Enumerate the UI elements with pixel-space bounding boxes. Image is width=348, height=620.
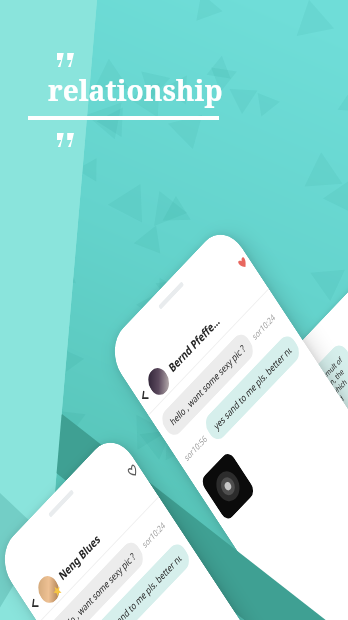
staticText: yes sand to me pls. better nudey xyxy=(101,551,184,620)
staticText: hello , want some sexy pic ? xyxy=(167,341,248,428)
staticText: sor10:24 xyxy=(140,518,167,550)
staticText: hello , want some sexy pic ? xyxy=(57,549,138,620)
button[interactable] xyxy=(135,385,153,407)
button[interactable] xyxy=(233,251,251,273)
staticText: sor10:24 xyxy=(250,310,277,342)
button[interactable] xyxy=(25,593,43,615)
staticText: Bernd Pfeffe... xyxy=(166,312,222,375)
button[interactable]: Bernd Pfeffe... xyxy=(104,221,348,620)
staticText: yes sand to me pls. better nudey xyxy=(211,343,294,433)
staticText: Neng Blues xyxy=(56,530,102,583)
staticText: sor10:56 xyxy=(182,432,209,463)
staticText: relationship xyxy=(48,71,223,109)
button[interactable]: In the tumult of cutting-in, the whale, … xyxy=(272,245,348,620)
button[interactable]: Neng Blues xyxy=(0,429,347,620)
staticText: In the tumult of cutting-in, the whale, … xyxy=(305,353,348,429)
button[interactable] xyxy=(123,459,141,481)
